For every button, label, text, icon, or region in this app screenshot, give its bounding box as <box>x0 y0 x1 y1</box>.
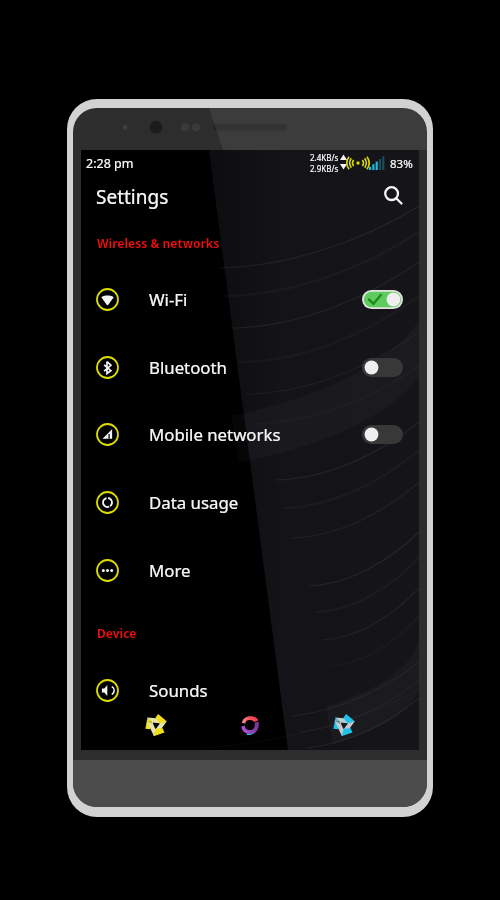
staticText: Bluetooth <box>149 356 227 379</box>
button[interactable]: Mobile networks <box>81 400 419 468</box>
button[interactable]: Search <box>379 181 409 211</box>
button[interactable]: Off <box>362 425 403 444</box>
button[interactable]: Gallery <box>330 711 358 739</box>
staticText: More <box>149 559 191 582</box>
button[interactable]: Bluetooth <box>81 333 419 401</box>
staticText: Wireless & networks <box>97 235 220 251</box>
staticText: Wi-Fi <box>149 288 188 311</box>
staticText: Sounds <box>149 679 208 702</box>
button[interactable]: Off <box>362 358 403 377</box>
staticText: 2:28 pm <box>86 155 134 172</box>
button[interactable]: Sounds <box>81 656 419 724</box>
button[interactable]: Apps <box>142 711 170 739</box>
button[interactable]: On <box>362 290 403 309</box>
button[interactable]: Wi-Fi <box>81 265 419 333</box>
button[interactable]: Data usage <box>81 468 419 536</box>
staticText: Device <box>97 625 137 641</box>
staticText: 2.9KB/s <box>310 163 339 174</box>
staticText: 2.4KB/s <box>310 152 339 163</box>
staticText: Mobile networks <box>149 423 281 446</box>
button[interactable]: More <box>81 536 419 604</box>
staticText: 83% <box>390 156 413 172</box>
button[interactable]: Browser <box>235 710 265 740</box>
staticText: Settings <box>96 184 169 210</box>
staticText: Data usage <box>149 491 239 514</box>
